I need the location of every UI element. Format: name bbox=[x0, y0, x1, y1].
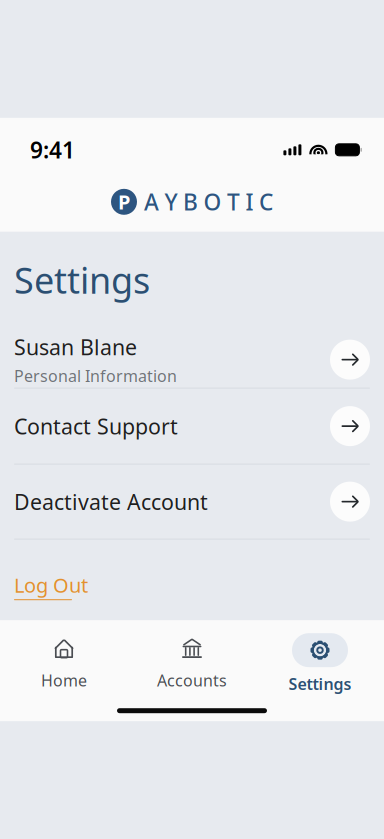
button[interactable]: Home bbox=[0, 629, 128, 699]
staticText: Y bbox=[164, 187, 177, 217]
staticText: Susan Blane bbox=[14, 333, 137, 361]
staticText: C bbox=[259, 187, 273, 217]
staticText: Settings bbox=[14, 256, 150, 304]
staticText: Contact Support bbox=[14, 412, 178, 440]
button[interactable]: Deactivate Account bbox=[0, 465, 384, 539]
staticText: Personal Information bbox=[14, 365, 177, 386]
staticText: Accounts bbox=[157, 670, 227, 691]
button[interactable]: Contact Support bbox=[0, 389, 384, 464]
staticText: Deactivate Account bbox=[14, 487, 208, 516]
button[interactable]: Accounts bbox=[128, 629, 256, 699]
staticText: Log Out bbox=[14, 572, 88, 598]
staticText: A bbox=[144, 187, 159, 217]
button[interactable]: Susan Blane bbox=[0, 332, 384, 388]
staticText: 9:41 bbox=[30, 135, 75, 165]
staticText: Settings bbox=[288, 673, 351, 694]
button[interactable]: Settings bbox=[256, 628, 384, 699]
staticText: O bbox=[203, 187, 221, 217]
staticText: T bbox=[227, 187, 240, 217]
staticText: I bbox=[245, 187, 253, 217]
staticText: P bbox=[118, 188, 130, 215]
staticText: Home bbox=[41, 670, 87, 691]
staticText: B bbox=[183, 187, 198, 217]
button[interactable]: Log Out bbox=[0, 540, 384, 612]
